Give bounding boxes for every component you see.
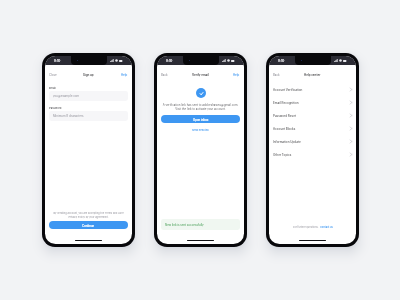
staticText: 9:10 (54, 59, 61, 63)
staticText: Continue (82, 224, 95, 227)
button[interactable]: Other Topics (269, 148, 356, 161)
staticText: Account Blocks (273, 127, 296, 131)
other: Open Other Topics (350, 153, 352, 156)
staticText: Account Verification (273, 88, 303, 92)
staticText: New link is sent successfully (165, 223, 204, 226)
button[interactable]: Continue (49, 221, 128, 229)
button[interactable]: Contact us (320, 226, 333, 229)
staticText: For further questions. (293, 226, 320, 229)
other: Open Account Blocks (350, 127, 352, 130)
staticText: Password (49, 106, 62, 109)
staticText: Help (121, 73, 128, 76)
button[interactable]: Account Verification (269, 83, 356, 96)
staticText: Email Recognition (273, 101, 299, 105)
staticText: Verify email (192, 73, 209, 77)
button[interactable]: Password Reset (269, 109, 356, 122)
staticText: Back (273, 73, 280, 76)
other: Open Account Verification (350, 88, 352, 91)
button[interactable]: Help (117, 70, 132, 79)
staticText: 9:10 (278, 59, 285, 63)
button[interactable]: Account Blocks (269, 122, 356, 135)
button[interactable]: Send new link (190, 127, 211, 134)
button[interactable]: Information Update (269, 135, 356, 148)
staticText: Help center (304, 73, 321, 77)
staticText: By creating account, you are accepting t… (48, 212, 129, 218)
staticText: Open inbox (193, 118, 209, 121)
button[interactable]: Open inbox (161, 115, 240, 123)
staticText: Help (233, 73, 240, 76)
staticText: Send new link (192, 129, 209, 132)
button[interactable]: Minimum 8 characters (49, 111, 128, 121)
staticText: 9:10 (166, 59, 173, 63)
staticText: Minimum 8 characters (53, 114, 84, 118)
other: Open Email Recognition (350, 101, 352, 104)
staticText: A verification link has sent to adobesha… (158, 103, 243, 111)
staticText: Password Reset (273, 114, 296, 118)
staticText: Other Topics (273, 153, 292, 157)
other: Open Password Reset (350, 114, 352, 117)
staticText: Back (161, 73, 168, 76)
staticText: Close (49, 73, 57, 76)
staticText: Email (49, 86, 56, 89)
button[interactable]: Back (157, 70, 172, 79)
staticText: Contact us (320, 226, 333, 229)
button[interactable]: Email Recognition (269, 96, 356, 109)
button[interactable]: Help (229, 70, 244, 79)
button[interactable]: Close (45, 70, 61, 79)
staticText: Information Update (273, 140, 301, 144)
staticText: Sign up (83, 73, 94, 77)
button[interactable]: Back (269, 70, 284, 79)
staticText: you@example.com (53, 94, 80, 98)
button[interactable]: you@example.com (49, 91, 128, 101)
other: Open Information Update (350, 140, 352, 143)
